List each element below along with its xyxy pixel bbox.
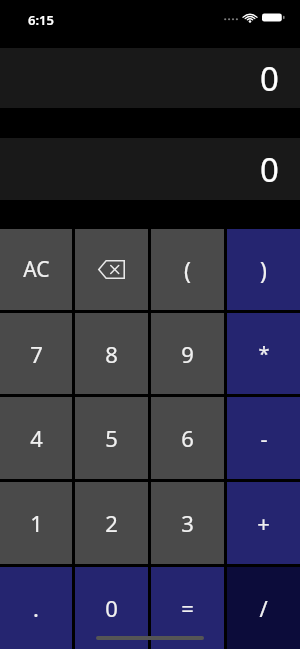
staticText: ( [184, 254, 191, 285]
staticText: 1 [30, 508, 43, 538]
staticText: 0 [260, 56, 279, 101]
button[interactable]: 5 [75, 397, 148, 479]
staticText: ) [260, 254, 267, 285]
button[interactable]: Backspace [75, 229, 148, 310]
staticText: 6 [181, 423, 194, 453]
staticText: 0 [260, 147, 279, 192]
button[interactable]: 0 [0, 138, 300, 200]
button[interactable]: 1 [0, 482, 72, 564]
staticText: = [181, 593, 194, 623]
staticText: 7 [30, 339, 43, 369]
button[interactable]: + [227, 482, 300, 564]
staticText: AC [23, 255, 50, 284]
button[interactable]: 2 [75, 482, 148, 564]
button[interactable]: 3 [151, 482, 224, 564]
button[interactable]: - [227, 397, 300, 479]
staticText: 3 [181, 508, 194, 538]
staticText: . [33, 593, 39, 623]
staticText: 6:15 [28, 11, 54, 29]
button[interactable]: 6 [151, 397, 224, 479]
button[interactable]: ) [227, 229, 300, 310]
staticText: 8 [105, 339, 118, 369]
staticText: / [259, 593, 268, 623]
staticText: 4 [30, 423, 43, 453]
staticText: 5 [105, 423, 118, 453]
button[interactable]: ( [151, 229, 224, 310]
staticText: 2 [105, 508, 118, 538]
button[interactable]: * [227, 313, 300, 394]
button[interactable]: AC [0, 229, 72, 310]
staticText: * [258, 340, 270, 367]
staticText: + [257, 508, 270, 538]
button[interactable]: / [227, 567, 300, 649]
staticText: - [260, 423, 268, 453]
button[interactable]: 4 [0, 397, 72, 479]
staticText: 0 [105, 593, 118, 623]
button[interactable]: 0 [0, 48, 300, 108]
button[interactable]: 8 [75, 313, 148, 394]
button[interactable]: 0 [75, 567, 148, 649]
staticText: 9 [181, 339, 194, 369]
button[interactable]: = [151, 567, 224, 649]
button[interactable]: . [0, 567, 72, 649]
button[interactable]: 7 [0, 313, 72, 394]
button[interactable]: 9 [151, 313, 224, 394]
